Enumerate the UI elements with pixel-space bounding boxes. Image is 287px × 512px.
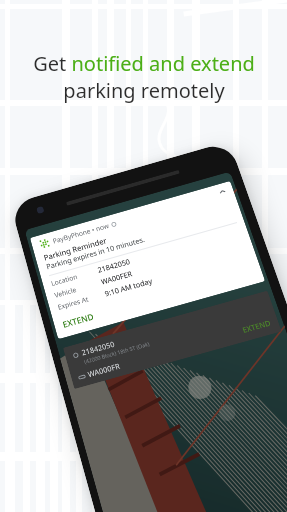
button[interactable]: EXTEND <box>61 309 96 331</box>
staticText: parking remotely <box>63 77 225 104</box>
staticText: WA000FR <box>87 361 122 380</box>
button[interactable]: Collapse <box>218 188 227 196</box>
button[interactable]: EXTEND <box>241 318 274 341</box>
staticText: WA00FER <box>100 269 134 288</box>
staticText: PayByPhone • now <box>52 221 110 245</box>
staticText: 9:10 AM today <box>103 276 154 299</box>
button[interactable]: 21842050 <box>63 290 282 389</box>
staticText: Get notified and extend <box>33 50 255 77</box>
staticText: Expires At <box>57 290 106 312</box>
staticText: EXTEND <box>61 310 95 330</box>
staticText: Location <box>50 266 99 288</box>
staticText: Parking Reminder <box>42 235 108 263</box>
staticText: Vehicle <box>53 278 103 300</box>
button[interactable]: PayByPhone • now <box>30 181 265 339</box>
staticText: Parking expires in 10 minutes. <box>45 235 147 272</box>
staticText: 21842050 <box>80 339 117 359</box>
staticText: (42000 Block) 18th ST (Oak) <box>83 340 151 366</box>
staticText: EXTEND <box>241 318 273 336</box>
staticText: 21842050 <box>96 257 132 276</box>
